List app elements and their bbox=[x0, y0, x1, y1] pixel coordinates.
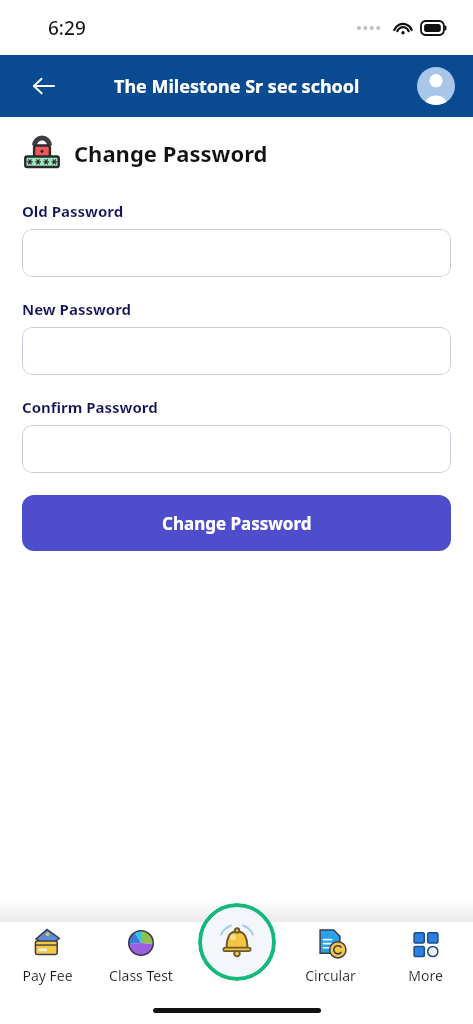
button[interactable]: Profile bbox=[417, 67, 455, 105]
staticText: The Milestone Sr sec school bbox=[114, 74, 360, 99]
button[interactable]: More bbox=[378, 922, 473, 989]
button[interactable]: Back bbox=[22, 64, 66, 108]
staticText: Circular bbox=[305, 966, 356, 985]
staticText: Class Test bbox=[109, 966, 173, 985]
button[interactable]: Class Test bbox=[94, 922, 188, 989]
staticText: Change Password bbox=[74, 138, 268, 168]
button[interactable] bbox=[22, 425, 451, 473]
staticText: Pay Fee bbox=[22, 966, 73, 985]
staticText: Change Password bbox=[162, 512, 312, 535]
button[interactable]: Pay Fee bbox=[0, 922, 94, 989]
staticText: More bbox=[408, 966, 443, 985]
staticText: Old Password bbox=[22, 201, 124, 221]
staticText: 6:29 bbox=[48, 15, 86, 41]
button[interactable]: Change Password bbox=[22, 495, 451, 551]
staticText: New Password bbox=[22, 299, 132, 319]
staticText: Confirm Password bbox=[22, 397, 158, 417]
button[interactable] bbox=[22, 327, 451, 375]
button[interactable]: Notifications bbox=[198, 903, 276, 981]
button[interactable]: Circular bbox=[283, 922, 378, 989]
button[interactable] bbox=[22, 229, 451, 277]
